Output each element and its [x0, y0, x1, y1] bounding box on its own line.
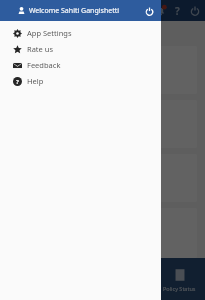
button[interactable]: [8, 208, 197, 258]
staticText: Policy Status: [163, 285, 196, 292]
button[interactable]: Policy: [8, 29, 37, 41]
button[interactable]: Make a Grievance: [8, 154, 197, 202]
button[interactable]: App Settings: [0, 25, 161, 41]
staticText: Rate us: [27, 44, 53, 54]
button[interactable]: Help: [169, 2, 186, 19]
button[interactable]: All Policies: [8, 46, 197, 94]
button[interactable]: Request Status: [8, 100, 197, 148]
staticText: Help: [27, 76, 44, 86]
button[interactable]: Rate us: [0, 41, 161, 57]
button[interactable]: Notifications: [152, 2, 169, 19]
button[interactable]: Policy Status: [154, 258, 205, 300]
staticText: Feedback: [27, 60, 61, 70]
staticText: ?: [175, 4, 180, 18]
staticText: App Settings: [27, 28, 72, 38]
button[interactable]: Logout: [141, 3, 157, 19]
staticText: Welcome Sahiti Gangishetti: [29, 6, 120, 16]
button[interactable]: Feedback: [0, 57, 161, 73]
staticText: Policy: [14, 31, 31, 39]
button[interactable]: ?: [0, 73, 161, 89]
button[interactable]: Logout: [186, 2, 203, 19]
staticText: ?: [16, 78, 19, 86]
